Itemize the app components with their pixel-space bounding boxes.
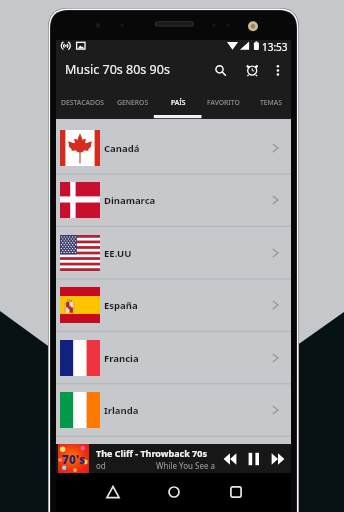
staticText: od (96, 460, 106, 471)
staticText: FAVORITO (207, 98, 240, 107)
staticText: 13:53 (262, 40, 288, 53)
staticText: EE.UU (104, 247, 132, 260)
button[interactable]: DESTACADOS (58, 86, 106, 119)
staticText: 70's (62, 451, 86, 467)
staticText: Music 70s 80s 90s (65, 61, 170, 78)
staticText: PAÍS (171, 98, 186, 107)
staticText: Canadá (104, 142, 140, 155)
button[interactable]: GENEROS (109, 86, 157, 119)
staticText: España (104, 299, 138, 312)
staticText: Irlanda (104, 404, 139, 417)
staticText: While You See a (156, 460, 216, 471)
button[interactable]: Recents (224, 480, 248, 504)
button[interactable]: Dinamarca (56, 174, 291, 226)
staticText: The Cliff - Throwback 70s (96, 447, 207, 459)
staticText: GENEROS (117, 98, 149, 107)
staticText: Dinamarca (104, 194, 156, 207)
button[interactable]: Irlanda (56, 384, 291, 436)
button[interactable]: TEMAS (247, 86, 295, 119)
button[interactable]: EE.UU (56, 227, 291, 279)
button[interactable]: PAÍS (154, 86, 202, 119)
button[interactable]: Back (101, 480, 125, 504)
button[interactable]: Search (208, 55, 234, 81)
button[interactable]: Previous (220, 449, 240, 469)
button[interactable]: Canadá (56, 122, 291, 174)
button[interactable]: Alarm (239, 55, 265, 81)
staticText: Francia (104, 352, 139, 365)
button[interactable]: Home (162, 480, 186, 504)
button[interactable]: More options (265, 55, 291, 81)
button[interactable]: España (56, 279, 291, 331)
button[interactable]: Francia (56, 332, 291, 384)
button[interactable]: Pause (244, 449, 264, 469)
staticText: DESTACADOS (61, 98, 104, 107)
button[interactable]: Next (268, 449, 288, 469)
staticText: TEMAS (260, 98, 283, 107)
button[interactable]: FAVORITO (199, 86, 247, 119)
